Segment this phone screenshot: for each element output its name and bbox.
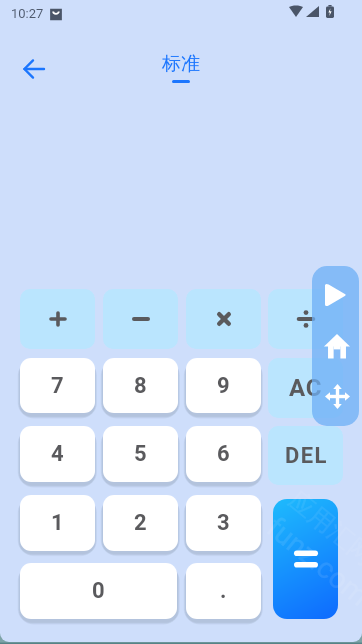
staticText: 1 [51, 510, 64, 536]
staticText: DEL [285, 443, 328, 469]
staticText: 8 [134, 373, 147, 399]
staticText: 标准 [162, 52, 200, 76]
staticText: 10:27 [11, 6, 44, 21]
button[interactable]: Home [324, 333, 350, 359]
button[interactable]: 5 [103, 426, 178, 482]
button[interactable]: 2 [103, 495, 178, 551]
staticText: 9 [217, 373, 230, 399]
button[interactable]: Play [325, 283, 347, 307]
button[interactable]: Plus [20, 289, 95, 349]
button[interactable]: Divide [268, 289, 343, 349]
staticText: 4 [51, 441, 64, 467]
button[interactable]: Move [325, 384, 350, 409]
staticText: AC [289, 374, 323, 402]
button[interactable]: Equals [273, 499, 338, 619]
staticText: 7 [51, 373, 64, 399]
button[interactable]: 6 [186, 426, 261, 482]
staticText: 2 [134, 510, 147, 536]
button[interactable]: 9 [186, 358, 261, 413]
button[interactable]: DEL [268, 426, 343, 485]
button[interactable]: AC [268, 358, 343, 418]
staticText: 6 [217, 441, 230, 467]
button[interactable]: 标准 [162, 52, 200, 76]
staticText: funz.com [260, 510, 362, 613]
button[interactable]: Minus [103, 289, 178, 349]
button[interactable]: 1 [20, 495, 95, 551]
staticText: 应用汇网 [283, 484, 362, 571]
button[interactable]: 7 [20, 358, 95, 413]
button[interactable]: Back [14, 49, 54, 89]
staticText: 0 [92, 578, 105, 604]
staticText: 5 [134, 441, 147, 467]
staticText: 3 [217, 510, 230, 536]
button[interactable]: . [186, 563, 261, 619]
button[interactable]: 4 [20, 426, 95, 482]
button[interactable]: Multiply [186, 289, 261, 349]
staticText: . [220, 578, 227, 604]
button[interactable]: 0 [20, 563, 177, 619]
button[interactable]: 8 [103, 358, 178, 413]
button[interactable]: 3 [186, 495, 261, 551]
